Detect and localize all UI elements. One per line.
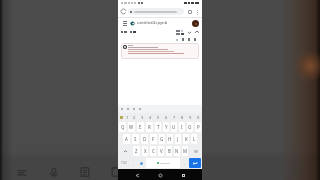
button[interactable]: Emoji <box>137 157 145 169</box>
staticText: Z <box>135 148 138 154</box>
staticText: R <box>148 124 151 130</box>
button[interactable]: Enter <box>189 158 201 168</box>
button[interactable]: Playlist <box>15 165 29 179</box>
button[interactable]: 4 <box>146 113 154 121</box>
staticText: N <box>175 148 179 154</box>
button[interactable]: A <box>123 134 130 144</box>
button[interactable]: N <box>174 146 180 156</box>
staticText: 8 <box>181 115 184 120</box>
button[interactable]: Editor tool <box>126 107 130 111</box>
button[interactable]: 7 <box>170 113 178 121</box>
button[interactable]: C <box>150 146 156 156</box>
staticText: F <box>152 136 155 142</box>
staticText: Q <box>121 124 125 130</box>
staticText: 0 <box>197 115 200 120</box>
button[interactable]: Keyboard settings <box>119 114 123 120</box>
staticText: V <box>160 148 163 154</box>
button[interactable]: Share <box>109 165 123 179</box>
button[interactable]: D <box>141 134 148 144</box>
button[interactable]: Back <box>133 171 141 179</box>
staticText: ?123 <box>121 161 127 165</box>
button[interactable]: I <box>179 122 185 132</box>
button[interactable]: Backspace <box>190 146 201 156</box>
button[interactable] <box>130 31 136 33</box>
button[interactable]: E <box>137 122 144 132</box>
button[interactable]: Z <box>133 146 140 156</box>
button[interactable]: Recents <box>179 171 187 179</box>
button[interactable]: H <box>167 134 173 144</box>
button[interactable]: Tabs <box>186 8 193 15</box>
button[interactable]: ?123 <box>118 157 130 169</box>
staticText: B <box>168 148 171 154</box>
button[interactable]: Notes <box>78 165 92 179</box>
button[interactable]: Home <box>156 171 164 179</box>
button[interactable]: Account <box>192 20 199 27</box>
staticText: 1 <box>126 115 129 120</box>
button[interactable] <box>121 31 127 33</box>
button[interactable]: O <box>187 122 193 132</box>
button[interactable]: Q <box>119 122 126 132</box>
staticText: W <box>129 124 134 130</box>
button[interactable]: T <box>155 122 161 132</box>
button[interactable]: Microphone <box>47 165 61 179</box>
button[interactable]: P <box>195 122 201 132</box>
button[interactable]: Y <box>163 122 169 132</box>
staticText: M <box>183 148 187 154</box>
button[interactable]: Editor tool <box>138 107 142 111</box>
staticText: D <box>143 136 147 142</box>
staticText: 5 <box>157 115 160 120</box>
button[interactable]: 5 <box>154 113 162 121</box>
button[interactable]: , <box>130 157 137 169</box>
button[interactable]: 0 <box>194 113 202 121</box>
button[interactable]: U <box>171 122 177 132</box>
staticText: H <box>168 136 172 142</box>
staticText: L <box>193 136 196 142</box>
button[interactable]: Cell action <box>186 37 191 42</box>
button[interactable]: V <box>158 146 164 156</box>
staticText: Y <box>165 124 168 130</box>
staticText: 4 <box>149 115 152 120</box>
button[interactable]: K <box>183 134 189 144</box>
button[interactable]: Cell action <box>180 37 185 42</box>
button[interactable]: 1 <box>124 113 131 121</box>
button[interactable]: G <box>159 134 165 144</box>
staticText: 6 <box>165 115 168 120</box>
staticText: C <box>152 148 155 154</box>
button[interactable]: 3 <box>138 113 146 121</box>
staticText: G <box>160 136 164 142</box>
button[interactable]: J <box>175 134 181 144</box>
staticText: I <box>181 124 183 130</box>
button[interactable]: Cell action <box>174 37 179 42</box>
button[interactable]: S <box>132 134 139 144</box>
staticText: A <box>125 136 128 142</box>
button[interactable]: 2 <box>131 113 138 121</box>
button[interactable]: 8 <box>178 113 186 121</box>
staticText: . <box>184 161 185 166</box>
staticText: J <box>177 136 179 142</box>
button[interactable]: Reload <box>120 8 127 15</box>
button[interactable]: 6 <box>162 113 170 121</box>
button[interactable]: L <box>191 134 197 144</box>
staticText: , <box>133 161 134 166</box>
button[interactable]: W <box>128 122 135 132</box>
button[interactable]: Editor tool <box>132 107 136 111</box>
button[interactable]: Menu <box>121 20 128 27</box>
button[interactable]: B <box>166 146 172 156</box>
staticText: X <box>144 148 147 154</box>
staticText: 9 <box>189 115 192 120</box>
button[interactable]: R <box>146 122 153 132</box>
button[interactable]: Shift <box>119 146 131 156</box>
staticText: 7 <box>173 115 176 120</box>
button[interactable]: Editor tool <box>120 107 124 111</box>
staticText: T <box>157 124 160 130</box>
button[interactable]: Cell action <box>192 37 197 42</box>
button[interactable]: 9 <box>186 113 194 121</box>
button[interactable]: X <box>142 146 148 156</box>
button[interactable]: M <box>182 146 188 156</box>
staticText: 2 <box>133 115 136 120</box>
button[interactable] <box>128 8 184 15</box>
button[interactable]: More options <box>194 9 200 15</box>
button[interactable]: Space <box>146 158 180 168</box>
button[interactable]: F <box>150 134 157 144</box>
